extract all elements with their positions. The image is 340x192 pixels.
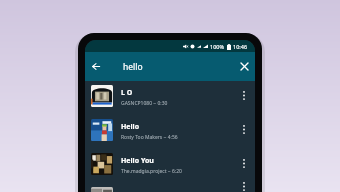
staticText: L O xyxy=(121,88,133,98)
button[interactable]: More options xyxy=(237,183,251,192)
staticText: Rosty Too Makers ~ 4:56 xyxy=(121,134,178,141)
staticText: hello xyxy=(123,61,143,73)
staticText: GASNCP1080 ~ 0:30 xyxy=(121,100,168,107)
staticText: 10:46 xyxy=(233,43,248,50)
button[interactable]: Hello You xyxy=(85,149,255,183)
staticText: The.madgia.project ~ 6:20 xyxy=(121,168,182,175)
staticText: 100% xyxy=(210,43,225,50)
button[interactable]: Hello xyxy=(85,115,255,149)
button[interactable]: Hello xyxy=(85,183,255,192)
staticText: Hello You xyxy=(121,156,154,166)
staticText: Hello xyxy=(121,122,140,132)
button[interactable]: More options xyxy=(237,81,251,111)
button[interactable]: Clear search xyxy=(234,52,255,81)
button[interactable]: More options xyxy=(237,149,251,179)
button[interactable]: Back xyxy=(85,52,106,81)
button[interactable]: L O xyxy=(85,81,255,115)
button[interactable]: More options xyxy=(237,115,251,145)
